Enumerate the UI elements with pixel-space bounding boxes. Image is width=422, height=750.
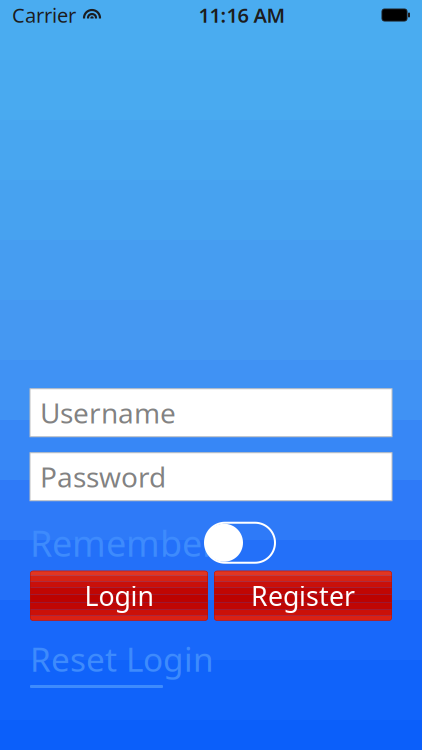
staticText: Register xyxy=(251,578,355,613)
staticText: Remember xyxy=(30,519,217,567)
staticText: Username xyxy=(40,394,176,431)
button[interactable]: Remember me xyxy=(205,523,275,563)
button[interactable]: Reset Login xyxy=(30,637,214,688)
staticText: Login xyxy=(84,578,153,613)
button[interactable]: Register xyxy=(214,571,392,621)
staticText: Carrier xyxy=(12,2,76,28)
button[interactable]: Login xyxy=(30,571,208,621)
staticText: Reset Login xyxy=(30,637,214,681)
staticText: Password xyxy=(40,458,166,495)
staticText: 11:16 AM xyxy=(198,2,285,28)
